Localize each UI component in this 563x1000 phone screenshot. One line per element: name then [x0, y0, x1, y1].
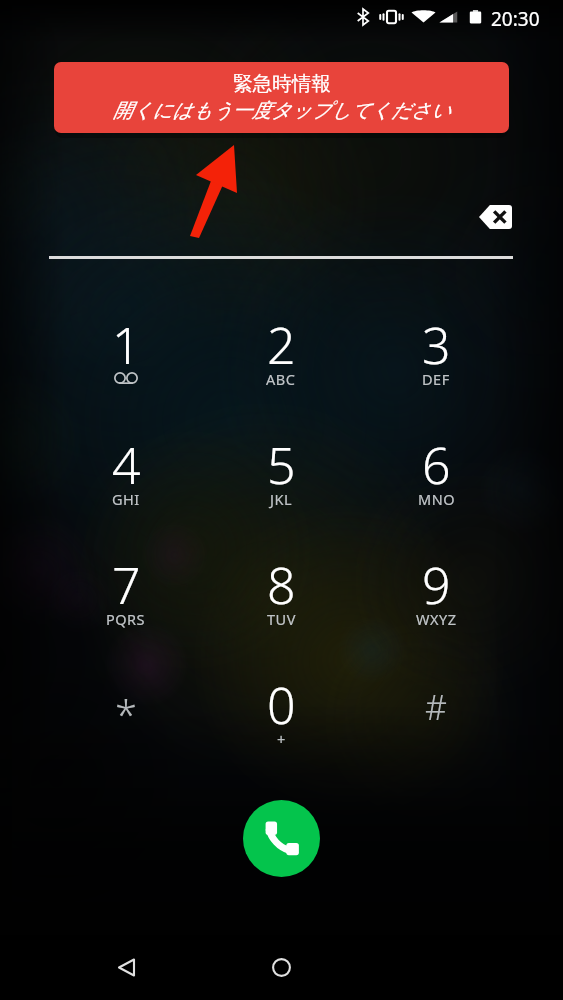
button[interactable]: 8	[223, 530, 339, 648]
staticText: 4	[112, 431, 141, 499]
button[interactable]: 1	[68, 290, 184, 408]
staticText: 5	[267, 431, 296, 499]
staticText: 2	[267, 311, 296, 379]
staticText: GHI	[112, 489, 140, 509]
staticText: *	[115, 687, 138, 741]
staticText: 3	[422, 311, 451, 379]
button[interactable]: 0	[223, 650, 339, 768]
staticText: MNO	[418, 489, 455, 509]
button[interactable]: Back	[102, 943, 150, 991]
staticText: JKL	[270, 489, 293, 509]
staticText: 6	[422, 431, 451, 499]
button[interactable]: Home	[257, 943, 305, 991]
button[interactable]: 9	[378, 530, 494, 648]
button[interactable]: Backspace	[471, 195, 519, 239]
button[interactable]: 7	[68, 530, 184, 648]
button[interactable]: 4	[68, 410, 184, 528]
button[interactable]: *	[68, 650, 184, 768]
button[interactable]: 緊急時情報	[54, 62, 509, 133]
staticText: DEF	[422, 369, 450, 389]
button[interactable]: 5	[223, 410, 339, 528]
staticText: 開くにはもう一度タップしてください	[113, 98, 451, 123]
staticText: 0	[267, 671, 296, 739]
staticText: 7	[112, 551, 141, 619]
button[interactable]: 6	[378, 410, 494, 528]
staticText: PQRS	[106, 609, 146, 629]
staticText: 緊急時情報	[233, 71, 331, 96]
staticText: #	[425, 684, 447, 730]
staticText: 1	[112, 311, 141, 379]
staticText: WXYZ	[416, 609, 457, 629]
button[interactable]: #	[378, 650, 494, 768]
staticText: TUV	[267, 609, 296, 629]
button[interactable]: 3	[378, 290, 494, 408]
button[interactable]: 2	[223, 290, 339, 408]
staticText: 20:30	[491, 6, 540, 32]
button[interactable]: Call	[243, 800, 320, 877]
staticText: ABC	[266, 369, 296, 389]
staticText: 9	[422, 551, 451, 619]
staticText: +	[277, 729, 286, 749]
staticText: 8	[267, 551, 296, 619]
